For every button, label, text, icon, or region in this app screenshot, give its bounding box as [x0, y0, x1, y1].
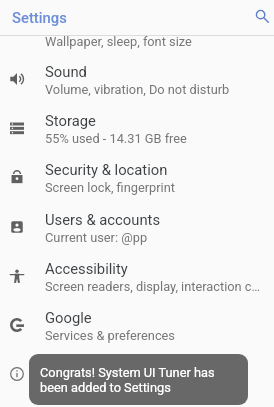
button[interactable]: Security & location — [0, 150, 274, 199]
button[interactable]: Sound — [0, 52, 274, 101]
staticText: Congrats! System UI Tuner has been added… — [40, 365, 215, 395]
staticText: Accessibility — [45, 260, 128, 277]
staticText: Services & preferences — [45, 328, 267, 343]
button[interactable]: Google — [0, 298, 274, 347]
staticText: Wallpaper, sleep, font size — [45, 34, 192, 49]
button[interactable]: Users & accounts — [0, 200, 274, 249]
staticText: Security & location — [45, 161, 168, 178]
staticText: Google — [45, 309, 92, 326]
staticText: Languages, time, backup, updates — [45, 377, 267, 392]
staticText: 55% used - 14.31 GB free — [45, 131, 267, 146]
button[interactable]: Accessibility — [0, 249, 274, 298]
staticText: Settings — [12, 9, 67, 26]
staticText: Screen readers, display, interaction col… — [45, 279, 267, 294]
staticText: Sound — [45, 63, 87, 80]
staticText: System — [45, 358, 95, 375]
staticText: Storage — [45, 112, 96, 129]
button[interactable]: Search — [246, 0, 274, 32]
staticText: Volume, vibration, Do not disturb — [45, 82, 267, 97]
button[interactable]: Storage — [0, 101, 274, 150]
button[interactable]: System — [0, 347, 274, 396]
staticText: Screen lock, fingerprint — [45, 180, 267, 195]
staticText: Current user: @pp — [45, 230, 267, 245]
staticText: Users & accounts — [45, 211, 161, 228]
